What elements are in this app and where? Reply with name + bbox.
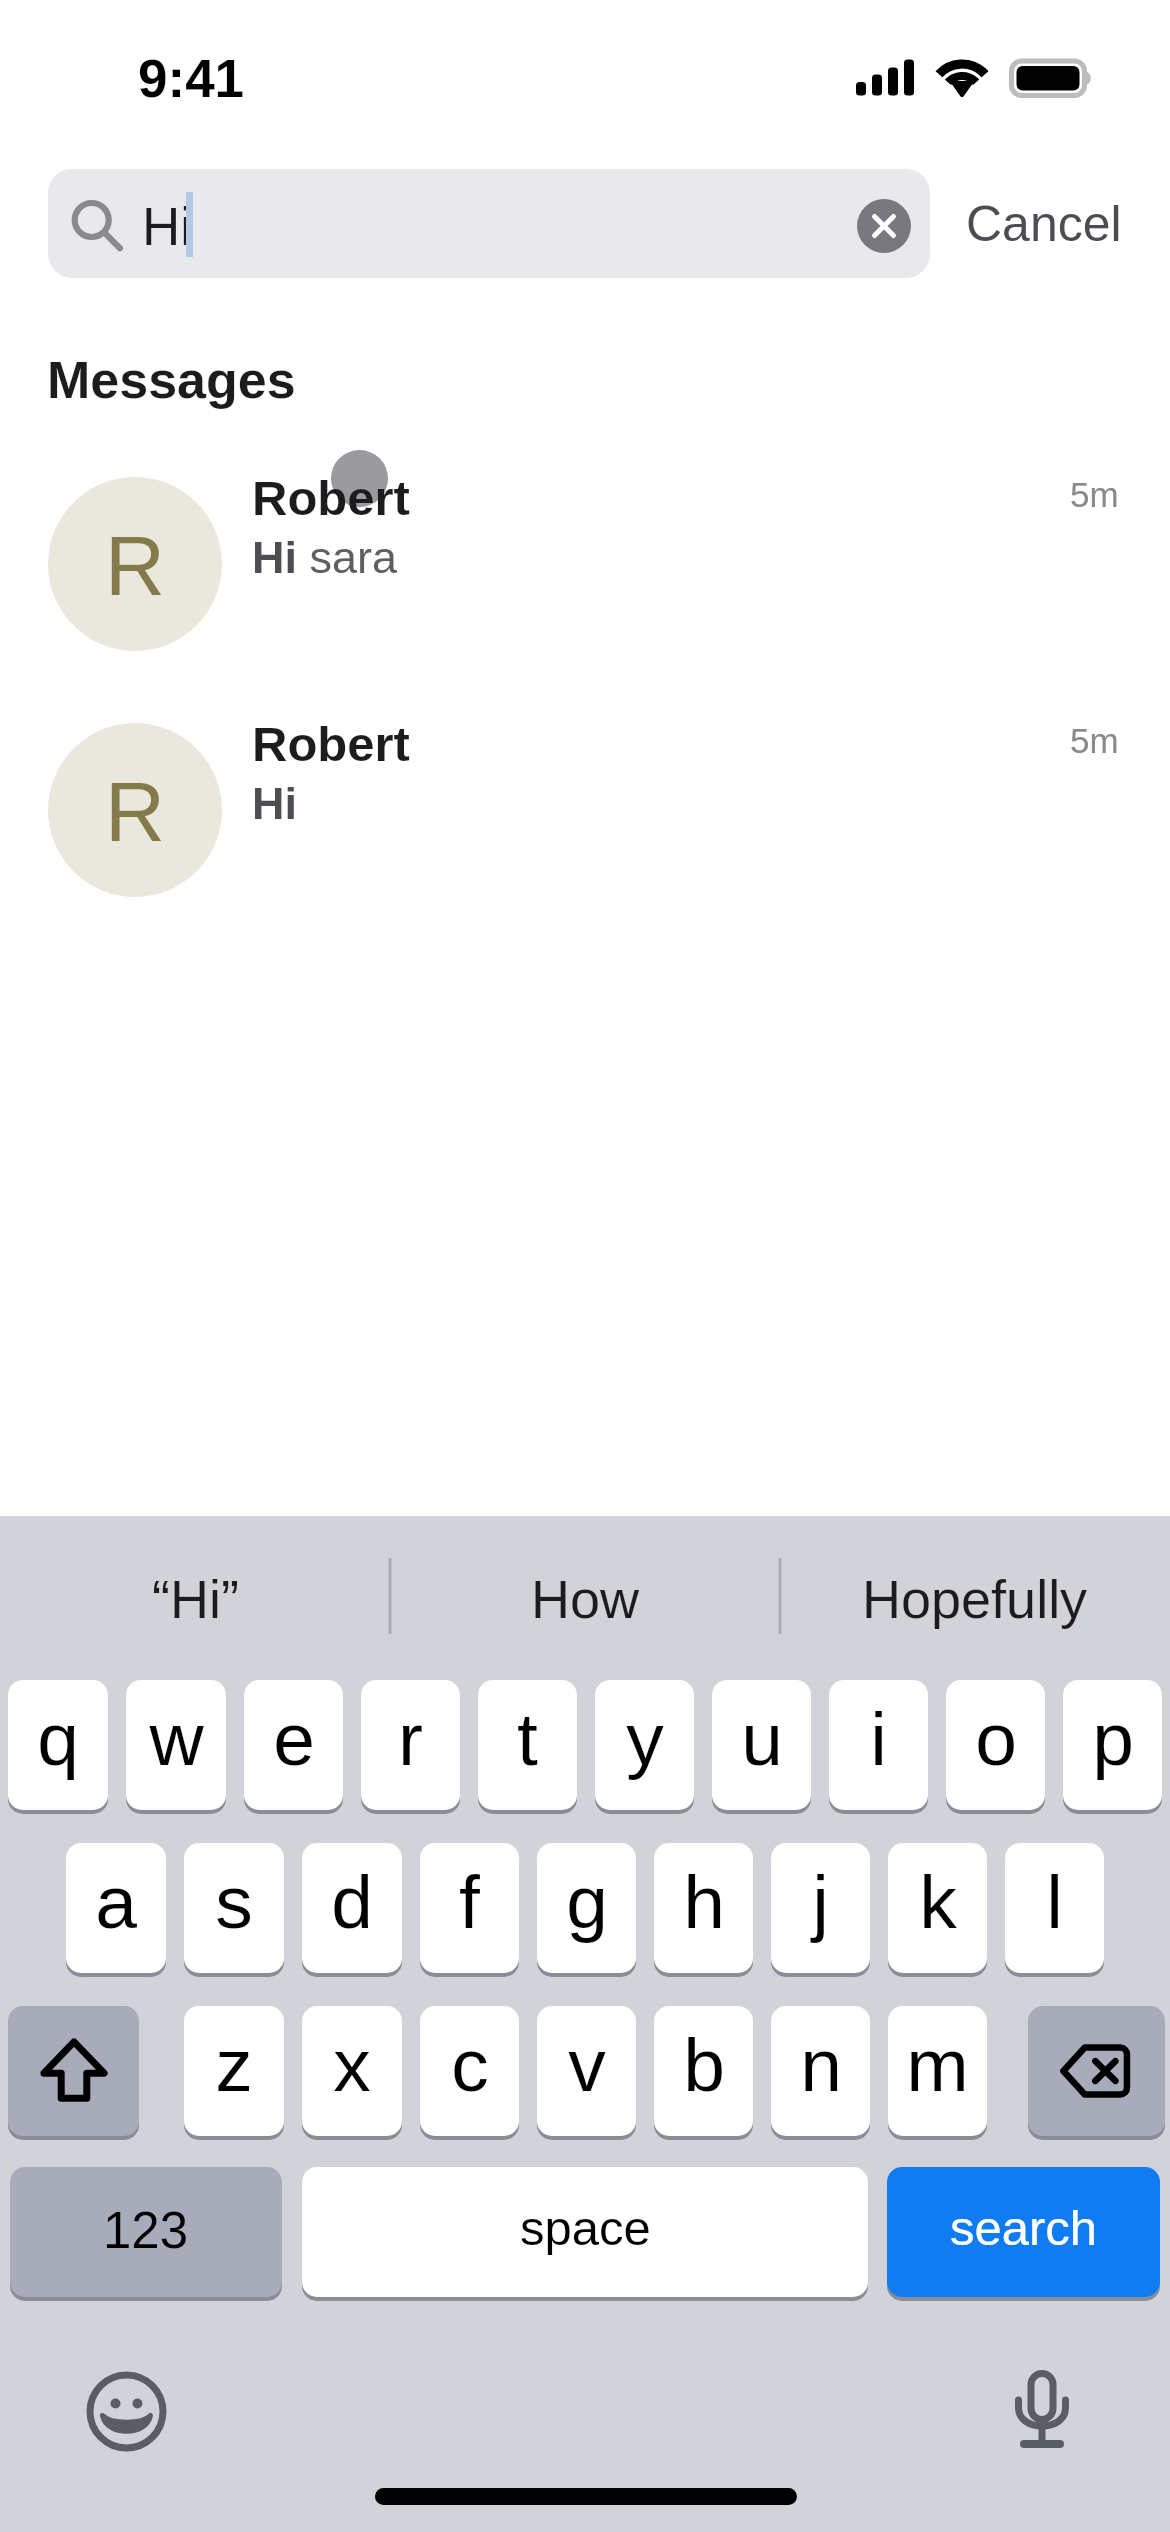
staticText: d (331, 1860, 373, 1944)
button[interactable]: search (887, 2167, 1160, 2297)
staticText: u (741, 1697, 783, 1781)
button[interactable]: Dictate (1011, 2366, 1073, 2428)
button[interactable]: e (244, 1680, 343, 1810)
staticText: 9:41 (138, 49, 245, 108)
button[interactable]: i (829, 1680, 928, 1810)
staticText: l (1046, 1860, 1063, 1944)
staticText: R (105, 520, 165, 613)
staticText: y (626, 1697, 664, 1781)
staticText: “Hi” (152, 1569, 239, 1629)
button[interactable]: Shift (8, 2006, 139, 2136)
button[interactable]: Hi (48, 169, 930, 278)
staticText: p (1092, 1697, 1134, 1781)
button[interactable]: y (595, 1680, 694, 1810)
staticText: t (517, 1697, 538, 1781)
button[interactable]: z (184, 2006, 284, 2136)
button[interactable]: b (654, 2006, 753, 2136)
staticText: Cancel (966, 196, 1122, 252)
staticText: R (105, 766, 165, 859)
staticText: m (906, 2023, 969, 2107)
button[interactable]: Clear text (857, 199, 911, 253)
staticText: h (683, 1860, 725, 1944)
button[interactable]: f (420, 1843, 519, 1973)
staticText: 123 (103, 2202, 189, 2259)
button[interactable] (0, 699, 1170, 921)
staticText: w (149, 1697, 204, 1781)
button[interactable]: q (8, 1680, 108, 1810)
staticText: Hi (142, 197, 193, 256)
button[interactable]: t (478, 1680, 577, 1810)
button[interactable]: g (537, 1843, 636, 1973)
button[interactable]: j (771, 1843, 870, 1973)
staticText: Hi sara (252, 532, 398, 582)
staticText: v (568, 2023, 606, 2107)
staticText: Robert (252, 471, 410, 526)
button[interactable]: “Hi” (0, 1516, 390, 1676)
staticText: c (451, 2023, 489, 2107)
staticText: Robert (252, 717, 410, 772)
button[interactable]: d (302, 1843, 402, 1973)
staticText: q (37, 1697, 79, 1781)
staticText: n (800, 2023, 842, 2107)
button[interactable]: k (888, 1843, 987, 1973)
button[interactable]: s (184, 1843, 284, 1973)
button[interactable]: r (361, 1680, 460, 1810)
staticText: j (812, 1860, 829, 1944)
staticText: space (520, 2201, 651, 2256)
staticText: s (215, 1860, 253, 1944)
button[interactable]: Delete (1028, 2006, 1165, 2136)
button[interactable]: c (420, 2006, 519, 2136)
staticText: How (531, 1569, 640, 1629)
button[interactable]: How (390, 1516, 780, 1676)
button[interactable]: v (537, 2006, 636, 2136)
button[interactable]: space (302, 2167, 868, 2297)
staticText: b (683, 2023, 725, 2107)
staticText: x (333, 2023, 371, 2107)
button[interactable]: o (946, 1680, 1045, 1810)
button[interactable] (0, 453, 1170, 675)
button[interactable]: 123 (10, 2167, 282, 2297)
staticText: g (566, 1860, 608, 1944)
staticText: r (398, 1697, 423, 1781)
staticText: i (870, 1697, 887, 1781)
button[interactable]: u (712, 1680, 811, 1810)
staticText: Hi (252, 778, 297, 828)
staticText: 5m (1070, 721, 1119, 760)
button[interactable]: m (888, 2006, 987, 2136)
button[interactable]: w (126, 1680, 226, 1810)
button[interactable]: p (1063, 1680, 1162, 1810)
staticText: z (215, 2023, 253, 2107)
staticText: e (273, 1697, 315, 1781)
button[interactable]: Hopefully (780, 1516, 1170, 1676)
button[interactable]: l (1005, 1843, 1104, 1973)
staticText: k (919, 1860, 957, 1944)
button[interactable]: h (654, 1843, 753, 1973)
staticText: f (459, 1860, 480, 1944)
staticText: Hopefully (862, 1569, 1088, 1629)
button[interactable]: n (771, 2006, 870, 2136)
button[interactable]: x (302, 2006, 402, 2136)
button[interactable]: Emoji keyboard (81, 2366, 172, 2457)
staticText: search (950, 2201, 1098, 2256)
staticText: 5m (1070, 475, 1119, 514)
staticText: a (95, 1860, 137, 1944)
staticText: Messages (47, 351, 296, 409)
button[interactable]: Cancel (966, 169, 1136, 278)
button[interactable]: a (66, 1843, 166, 1973)
staticText: o (975, 1697, 1017, 1781)
